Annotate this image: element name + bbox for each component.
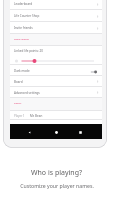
button[interactable]: Advanced settings [10,87,102,98]
staticText: Leaderboard [14,2,33,6]
staticText: Advanced settings [14,91,40,95]
staticText: Linked life points: 20 [14,49,43,53]
button[interactable]: Home [50,128,62,136]
button[interactable]: Dark mode toggle [90,70,97,74]
button[interactable]: Invite friends [10,22,102,34]
button[interactable]: Player 1 [10,111,102,120]
staticText: Players [14,102,22,105]
staticText: Game settings [14,38,29,41]
staticText: Player 1 [14,114,25,118]
staticText: Invite friends [14,26,33,30]
button[interactable]: Life Counter Shop [10,10,102,22]
staticText: Life Counter Shop [14,14,40,18]
staticText: Customize your player names. [20,182,94,189]
button[interactable]: Back [23,128,35,136]
staticText: Mr. Bean [30,114,43,118]
staticText: Who is playing? [31,168,82,178]
staticText: Dark mode [14,69,30,73]
button[interactable]: Board [10,76,102,87]
staticText: Board [14,80,23,84]
button[interactable]: Dark mode [10,65,102,76]
button[interactable]: Leaderboard [10,0,102,10]
button[interactable]: Recent apps [74,128,86,136]
button[interactable]: Linked life points: 20 [10,46,102,65]
